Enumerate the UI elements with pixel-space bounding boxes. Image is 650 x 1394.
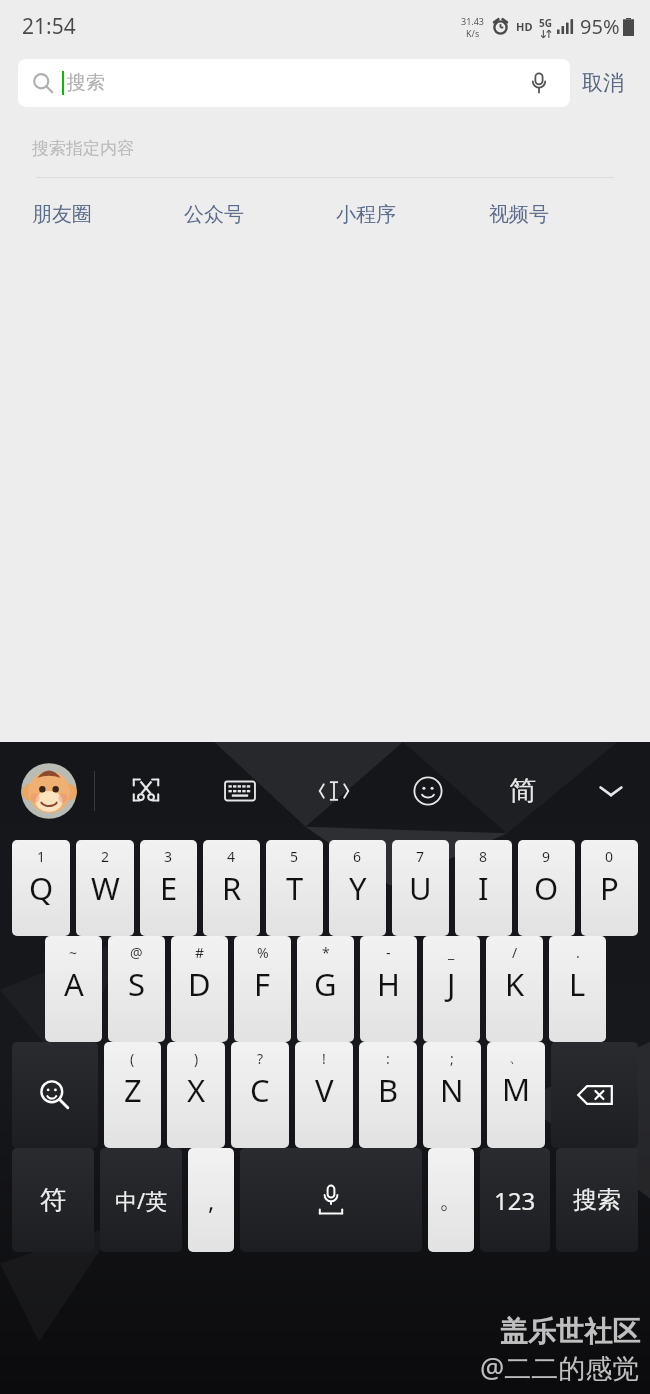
button[interactable]: 简	[498, 767, 546, 815]
button[interactable]: .	[549, 936, 606, 1042]
staticText: 简	[509, 774, 536, 808]
button[interactable]: Voice input	[240, 1148, 422, 1252]
button[interactable]: Backspace	[551, 1042, 638, 1148]
button[interactable]: ;	[423, 1042, 481, 1148]
staticText: V	[315, 1069, 334, 1111]
button[interactable]: Voice search	[522, 66, 556, 100]
button[interactable]: 小程序	[324, 196, 477, 233]
button[interactable]: Emoji	[404, 767, 452, 815]
staticText: A	[64, 963, 84, 1005]
button[interactable]: _	[423, 936, 480, 1042]
staticText: 符	[40, 1184, 66, 1217]
button[interactable]: 8	[455, 840, 512, 936]
button[interactable]: 1	[12, 840, 70, 936]
button[interactable]: 取消	[570, 64, 636, 102]
staticText: .	[576, 943, 580, 962]
staticText: /	[512, 943, 518, 962]
staticText: Z	[124, 1069, 142, 1111]
button[interactable]: %	[234, 936, 291, 1042]
staticText: 朋友圈	[32, 202, 92, 227]
staticText: N	[440, 1069, 464, 1111]
button[interactable]: Clipboard cut	[122, 767, 170, 815]
button[interactable]: 、	[487, 1042, 545, 1148]
button[interactable]: Emoji search	[12, 1042, 98, 1148]
staticText: ;	[450, 1049, 454, 1068]
staticText: 搜索	[573, 1185, 621, 1215]
staticText: 1	[37, 847, 46, 866]
staticText: D	[188, 963, 211, 1005]
button[interactable]: ?	[231, 1042, 289, 1148]
staticText: 5	[290, 847, 299, 866]
staticText: 3	[164, 847, 173, 866]
button[interactable]: @	[108, 936, 165, 1042]
staticText: 0	[605, 847, 614, 866]
button[interactable]: !	[295, 1042, 353, 1148]
staticText: :	[386, 1049, 390, 1068]
button[interactable]: 2	[76, 840, 134, 936]
staticText: 、	[509, 1049, 523, 1067]
button[interactable]: 6	[329, 840, 386, 936]
staticText: 搜索	[67, 71, 105, 95]
button[interactable]: 视频号	[477, 196, 630, 233]
button[interactable]: 0	[581, 840, 638, 936]
button[interactable]: 。	[428, 1148, 474, 1252]
staticText: X	[187, 1069, 206, 1111]
button[interactable]: 3	[140, 840, 197, 936]
button[interactable]: Input method avatar	[18, 760, 80, 822]
button[interactable]: 123	[480, 1148, 550, 1252]
staticText: 视频号	[489, 202, 549, 227]
staticText: I	[478, 867, 489, 909]
button[interactable]: :	[359, 1042, 417, 1148]
button[interactable]: 9	[518, 840, 575, 936]
button[interactable]: Cursor move	[310, 767, 358, 815]
staticText: @二二的感觉	[480, 1349, 640, 1386]
staticText: 。	[439, 1185, 463, 1215]
button[interactable]: 中/英	[100, 1148, 182, 1252]
staticText: P	[600, 867, 619, 909]
staticText: Y	[349, 867, 367, 909]
staticText: 6	[353, 847, 362, 866]
button[interactable]: ~	[45, 936, 102, 1042]
button[interactable]: #	[171, 936, 228, 1042]
staticText: 盖乐世社区	[500, 1314, 640, 1349]
staticText: 5G	[539, 16, 552, 30]
button[interactable]: ,	[188, 1148, 234, 1252]
staticText: B	[378, 1069, 399, 1111]
button[interactable]: Keyboard settings	[216, 767, 264, 815]
staticText: 搜索指定内容	[32, 138, 134, 159]
staticText: 95%	[580, 13, 620, 40]
button[interactable]: 搜索	[18, 59, 570, 107]
button[interactable]: 朋友圈	[20, 196, 172, 233]
button[interactable]: 7	[392, 840, 449, 936]
staticText: T	[286, 867, 304, 909]
button[interactable]: 4	[203, 840, 260, 936]
staticText: E	[160, 867, 178, 909]
staticText: )	[194, 1049, 199, 1068]
button[interactable]: 公众号	[172, 196, 324, 233]
staticText: 中/英	[115, 1185, 168, 1215]
button[interactable]: *	[297, 936, 354, 1042]
staticText: 21:54	[22, 12, 76, 41]
staticText: S	[128, 963, 146, 1005]
staticText: Q	[29, 867, 54, 909]
staticText: !	[322, 1049, 326, 1068]
button[interactable]: 符	[12, 1148, 94, 1252]
staticText: M	[502, 1068, 531, 1110]
button[interactable]: Hide keyboard	[588, 768, 634, 814]
button[interactable]: 搜索	[556, 1148, 638, 1252]
staticText: W	[91, 867, 120, 909]
staticText: J	[447, 963, 456, 1005]
staticText: 7	[416, 847, 425, 866]
button[interactable]: /	[486, 936, 543, 1042]
button[interactable]: )	[167, 1042, 225, 1148]
staticText: %	[257, 943, 269, 962]
staticText: L	[569, 963, 586, 1005]
staticText: (	[130, 1049, 135, 1068]
staticText: @	[130, 943, 143, 962]
staticText: O	[534, 867, 559, 909]
button[interactable]: -	[360, 936, 417, 1042]
button[interactable]: (	[104, 1042, 161, 1148]
button[interactable]: 5	[266, 840, 323, 936]
staticText: 9	[542, 847, 551, 866]
staticText: ?	[257, 1049, 264, 1068]
